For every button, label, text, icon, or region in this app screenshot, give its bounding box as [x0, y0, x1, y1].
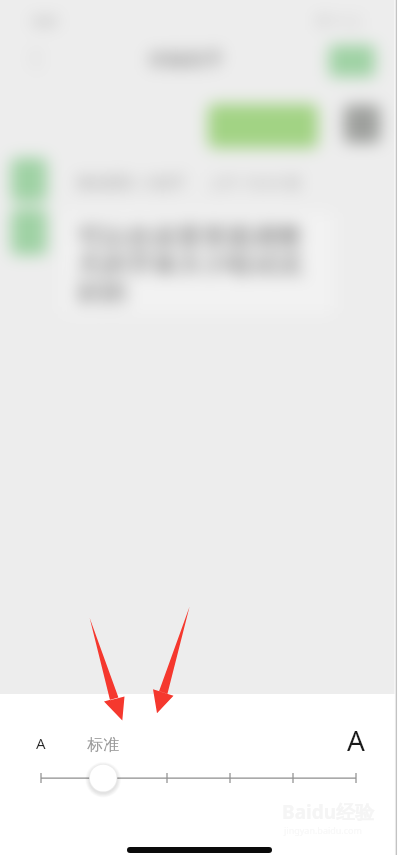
staticText: Baidu经验	[282, 799, 375, 825]
staticText: A	[347, 721, 365, 759]
staticText: 微信团队 小助手	[77, 172, 186, 192]
staticText: 标准	[87, 735, 119, 755]
staticText: 传输助手	[148, 48, 224, 72]
button[interactable]: Font size slider	[0, 694, 398, 855]
staticText: 可以在设置里面调整 天的字体大小啦试试 好的	[77, 221, 302, 308]
staticText: A	[36, 733, 46, 753]
